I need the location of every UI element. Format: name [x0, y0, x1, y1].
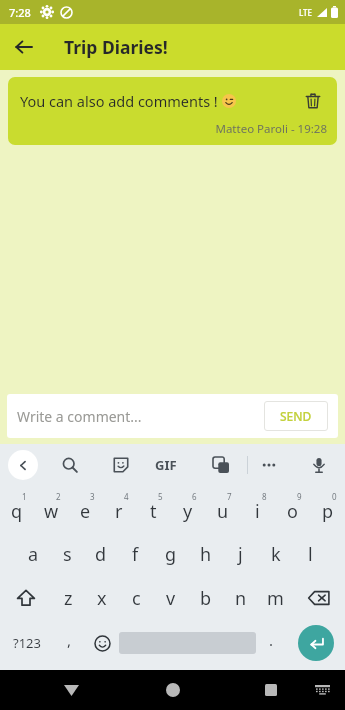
- staticText: 7: [227, 491, 232, 502]
- staticText: LTE: [299, 7, 313, 18]
- button[interactable]: GIF: [155, 456, 177, 474]
- button[interactable]: x: [85, 576, 119, 620]
- button[interactable]: f: [118, 532, 153, 576]
- staticText: 6: [192, 491, 197, 502]
- button[interactable]: c: [119, 576, 153, 620]
- button[interactable]: g: [153, 532, 188, 576]
- staticText: Matteo Paroli - 19:28: [20, 121, 327, 137]
- staticText: 7:28: [9, 5, 31, 20]
- staticText: f: [132, 542, 139, 567]
- button[interactable]: Delete comment: [299, 87, 327, 115]
- staticText: 3: [90, 491, 95, 502]
- staticText: u: [217, 499, 229, 524]
- button[interactable]: h: [188, 532, 223, 576]
- button[interactable]: j: [223, 532, 258, 576]
- button[interactable]: n: [223, 576, 258, 620]
- staticText: r: [115, 499, 123, 524]
- button[interactable]: Enter: [287, 620, 345, 666]
- button[interactable]: u: [205, 486, 240, 532]
- staticText: l: [308, 542, 313, 567]
- staticText: You can also add comments !: [20, 91, 218, 111]
- staticText: m: [267, 586, 284, 611]
- staticText: 2: [56, 491, 61, 502]
- button[interactable]: Emoji: [85, 620, 119, 666]
- button[interactable]: o: [275, 486, 310, 532]
- button[interactable]: More options: [253, 449, 285, 481]
- button[interactable]: Home: [157, 674, 189, 706]
- button[interactable]: q: [0, 486, 34, 532]
- staticText: c: [132, 586, 141, 611]
- button[interactable]: t: [136, 486, 170, 532]
- staticText: 9: [297, 491, 302, 502]
- button[interactable]: Back: [6, 29, 42, 65]
- button[interactable]: z: [51, 576, 85, 620]
- staticText: Write a comment...: [17, 407, 142, 426]
- button[interactable]: Stickers: [105, 449, 137, 481]
- staticText: 5: [158, 491, 163, 502]
- staticText: o: [287, 499, 298, 524]
- button[interactable]: Back: [55, 674, 87, 706]
- staticText: j: [238, 542, 243, 567]
- button[interactable]: Shift: [0, 576, 51, 620]
- staticText: .: [269, 630, 274, 650]
- button[interactable]: e: [68, 486, 102, 532]
- staticText: g: [165, 542, 177, 567]
- button[interactable]: Collapse toolbar: [8, 450, 38, 480]
- staticText: s: [63, 542, 72, 567]
- staticText: v: [166, 586, 176, 611]
- button[interactable]: SEND: [264, 401, 328, 431]
- staticText: e: [80, 499, 91, 524]
- button[interactable]: ?123: [0, 620, 54, 666]
- button[interactable]: Backspace: [293, 576, 345, 620]
- button[interactable]: w: [34, 486, 68, 532]
- button[interactable]: Recent apps: [255, 674, 287, 706]
- staticText: h: [200, 542, 212, 567]
- button[interactable]: Voice input: [303, 449, 335, 481]
- staticText: b: [200, 586, 212, 611]
- button[interactable]: d: [84, 532, 118, 576]
- button[interactable]: Write a comment...: [17, 407, 264, 426]
- button[interactable]: i: [240, 486, 275, 532]
- staticText: a: [28, 542, 39, 567]
- staticText: 0: [332, 491, 337, 502]
- staticText: SEND: [280, 408, 312, 424]
- staticText: z: [64, 586, 73, 611]
- staticText: 1: [22, 491, 27, 502]
- button[interactable]: s: [50, 532, 84, 576]
- staticText: 8: [262, 491, 267, 502]
- button[interactable]: b: [188, 576, 223, 620]
- button[interactable]: a: [16, 532, 50, 576]
- staticText: i: [255, 499, 260, 524]
- staticText: q: [11, 499, 23, 524]
- staticText: d: [95, 542, 107, 567]
- staticText: Trip Diaries!: [64, 35, 168, 59]
- button[interactable]: y: [170, 486, 205, 532]
- staticText: ,: [67, 630, 72, 650]
- button[interactable]: r: [102, 486, 136, 532]
- button[interactable]: p: [310, 486, 345, 532]
- staticText: y: [183, 499, 193, 524]
- button[interactable]: ,: [54, 620, 85, 666]
- staticText: t: [150, 499, 157, 524]
- button[interactable]: v: [153, 576, 188, 620]
- button[interactable]: k: [258, 532, 293, 576]
- staticText: k: [271, 542, 281, 567]
- staticText: w: [44, 499, 59, 524]
- button[interactable]: Keyboard: [309, 677, 335, 703]
- button[interactable]: You can also add comments !: [8, 77, 337, 145]
- button[interactable]: .: [256, 620, 287, 666]
- staticText: p: [322, 499, 334, 524]
- staticText: 4: [124, 491, 129, 502]
- button[interactable]: Search: [54, 449, 86, 481]
- staticText: x: [97, 586, 107, 611]
- staticText: n: [235, 586, 247, 611]
- button[interactable]: Translate: [205, 449, 237, 481]
- staticText: ?123: [13, 634, 41, 652]
- button[interactable]: m: [258, 576, 293, 620]
- button[interactable]: l: [293, 532, 328, 576]
